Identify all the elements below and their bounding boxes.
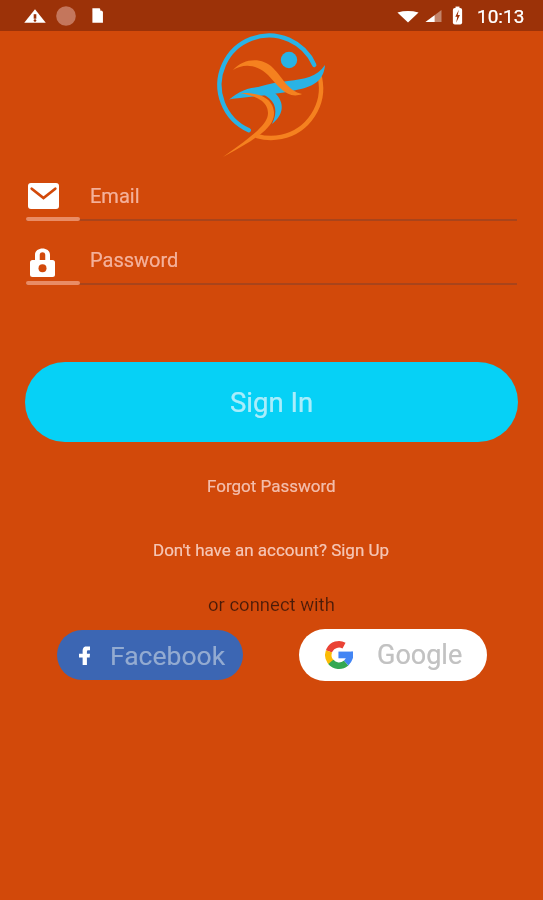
- staticText: Email: [90, 184, 140, 207]
- staticText: Forgot Password: [207, 476, 336, 496]
- staticText: Password: [90, 248, 179, 271]
- staticText: 10:13: [477, 5, 525, 27]
- button[interactable]: Don't have an account? Sign Up: [141, 534, 402, 566]
- staticText: Don't have an account? Sign Up: [153, 540, 390, 560]
- staticText: Facebook: [110, 640, 226, 671]
- staticText: or connect with: [208, 594, 335, 616]
- button[interactable]: Google: [299, 629, 487, 681]
- button[interactable]: Sign In: [25, 362, 518, 442]
- staticText: Sign In: [230, 386, 314, 418]
- button[interactable]: Facebook: [57, 630, 243, 680]
- button[interactable]: Forgot Password: [195, 470, 348, 502]
- staticText: Google: [377, 639, 463, 671]
